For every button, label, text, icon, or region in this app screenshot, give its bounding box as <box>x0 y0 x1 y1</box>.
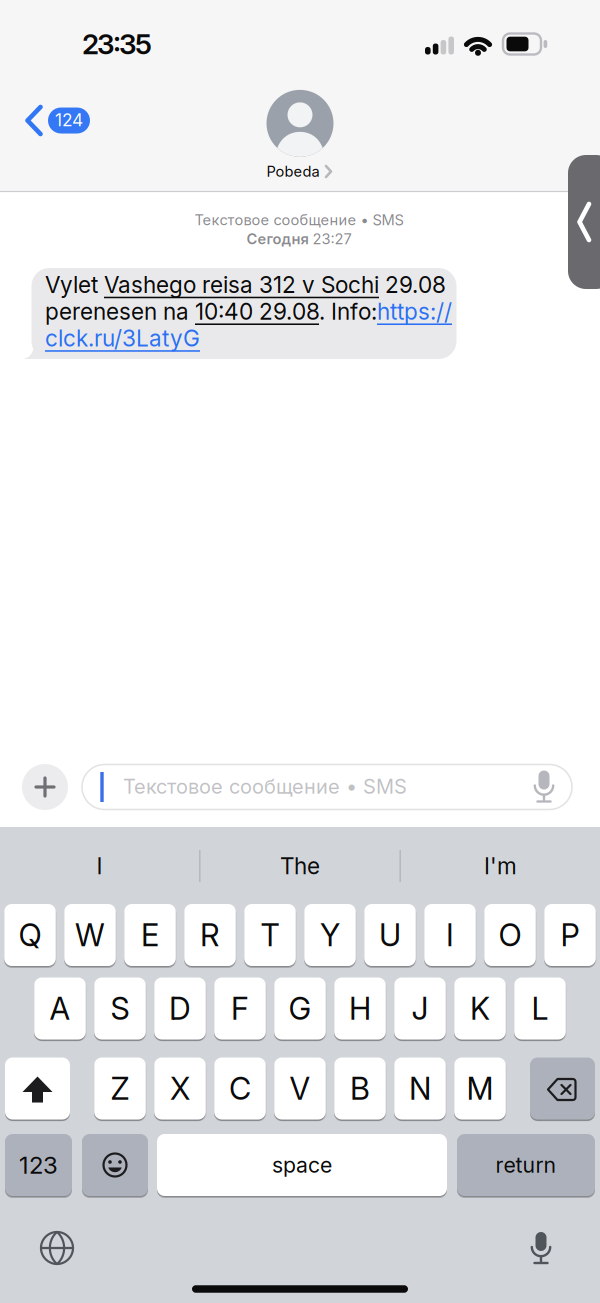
staticText: B <box>350 1070 370 1107</box>
button[interactable]: G <box>274 977 326 1039</box>
button[interactable]: H <box>334 977 386 1039</box>
button[interactable]: Dictate <box>526 1228 556 1268</box>
button[interactable]: S <box>94 977 146 1039</box>
button[interactable]: Shift <box>5 1057 70 1119</box>
button[interactable]: N <box>394 1057 446 1119</box>
staticText: Q <box>18 917 41 953</box>
staticText: D <box>169 990 191 1027</box>
staticText: Текстовое сообщение • SMS <box>123 775 407 798</box>
button[interactable]: return <box>457 1134 595 1196</box>
button[interactable]: O <box>484 904 536 966</box>
button[interactable]: space <box>157 1134 447 1196</box>
button[interactable]: A <box>34 977 86 1039</box>
button[interactable]: M <box>454 1057 506 1119</box>
button[interactable]: Dictate <box>529 769 559 803</box>
staticText: The <box>280 853 320 879</box>
staticText: W <box>75 917 105 953</box>
staticText: 23:35 <box>82 27 152 60</box>
staticText: H <box>349 990 371 1027</box>
button[interactable]: V <box>274 1057 326 1119</box>
staticText: K <box>470 990 490 1027</box>
staticText: Z <box>110 1070 129 1107</box>
staticText: E <box>141 917 159 953</box>
staticText: U <box>379 917 401 953</box>
staticText: space <box>272 1152 332 1178</box>
button[interactable]: U <box>364 904 416 966</box>
button[interactable]: Text message field <box>82 764 572 809</box>
staticText: T <box>260 917 279 953</box>
button[interactable]: The <box>200 853 399 879</box>
staticText: I <box>446 917 454 953</box>
staticText: 124 <box>55 110 83 130</box>
button[interactable]: E <box>124 904 176 966</box>
button[interactable]: 123 <box>5 1134 72 1196</box>
staticText: I'm <box>484 853 517 879</box>
staticText: X <box>170 1070 190 1107</box>
button[interactable]: F <box>214 977 266 1039</box>
button[interactable]: Open side panel <box>568 155 600 289</box>
button[interactable]: Pobeda conversation details <box>200 90 400 180</box>
staticText: P <box>560 917 579 953</box>
button[interactable]: I'm <box>401 853 600 879</box>
staticText: I <box>97 853 103 879</box>
button[interactable]: Add attachment <box>22 764 68 810</box>
staticText: F <box>231 990 249 1027</box>
staticText: S <box>110 990 129 1027</box>
staticText: Y <box>320 917 340 953</box>
staticText: J <box>411 990 428 1027</box>
button[interactable]: P <box>544 904 596 966</box>
button[interactable]: J <box>394 977 446 1039</box>
staticText: L <box>531 990 548 1027</box>
button[interactable]: I <box>0 853 199 879</box>
staticText: N <box>409 1070 431 1107</box>
staticText: Текстовое сообщение • SMS <box>194 211 403 229</box>
staticText: R <box>200 917 220 953</box>
staticText: Сегодня 23:27 <box>246 230 351 248</box>
button[interactable]: Emoji <box>82 1134 148 1196</box>
staticText: C <box>229 1070 251 1107</box>
staticText: Pobeda <box>266 163 319 180</box>
button[interactable]: R <box>184 904 236 966</box>
button[interactable]: W <box>64 904 116 966</box>
staticText: return <box>495 1152 556 1178</box>
staticText: A <box>49 990 70 1027</box>
button[interactable]: B <box>334 1057 386 1119</box>
button[interactable]: Y <box>304 904 356 966</box>
staticText: M <box>466 1070 493 1107</box>
button[interactable]: Back <box>0 0 600 192</box>
button[interactable]: Next keyboard <box>37 1228 77 1268</box>
staticText: G <box>288 990 311 1027</box>
button[interactable]: Q <box>4 904 56 966</box>
button[interactable]: L <box>514 977 566 1039</box>
staticText: V <box>289 1070 310 1107</box>
button[interactable]: Delete <box>530 1057 595 1119</box>
staticText: 123 <box>19 1151 58 1179</box>
button[interactable]: X <box>154 1057 206 1119</box>
button[interactable]: K <box>454 977 506 1039</box>
staticText: Vylet Vashego reisa 312 v Sochi 29.08 pe… <box>45 271 452 352</box>
button[interactable]: C <box>214 1057 266 1119</box>
button[interactable]: Z <box>94 1057 146 1119</box>
button[interactable]: T <box>244 904 296 966</box>
button[interactable]: D <box>154 977 206 1039</box>
button[interactable]: I <box>424 904 476 966</box>
staticText: O <box>498 917 521 953</box>
